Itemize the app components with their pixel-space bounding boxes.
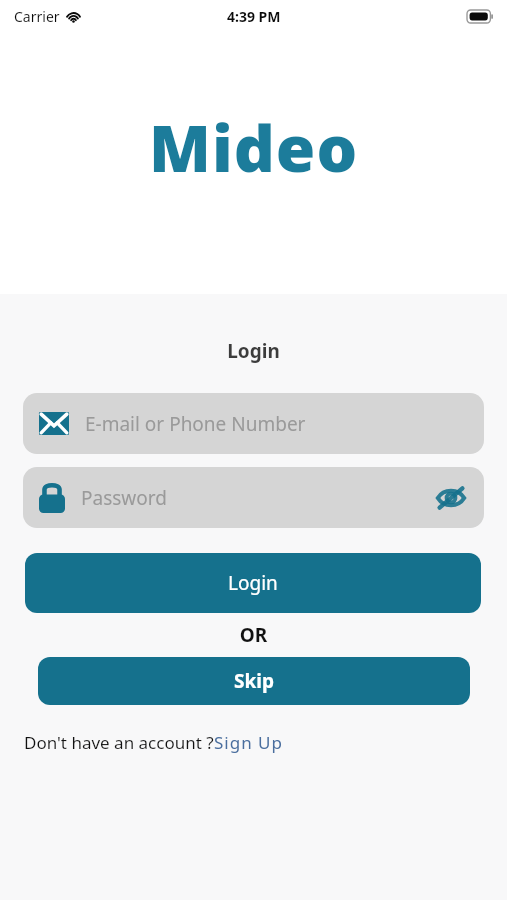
staticText: Carrier	[14, 7, 60, 26]
staticText: Skip	[234, 668, 274, 694]
button[interactable]: Show password	[436, 486, 466, 510]
button[interactable]: Skip	[38, 657, 470, 705]
staticText: Sign Up	[214, 731, 283, 754]
staticText: Login	[0, 338, 507, 364]
button[interactable]: Sign Up	[214, 731, 283, 754]
button[interactable]: Email	[23, 393, 484, 454]
other: Password	[39, 482, 65, 513]
staticText: Mideo	[149, 104, 359, 191]
staticText: E-mail or Phone Number	[85, 411, 306, 437]
staticText: Password	[81, 485, 167, 511]
button[interactable]: Login	[25, 553, 481, 613]
staticText: Don't have an account ?	[24, 731, 214, 754]
staticText: Login	[228, 570, 278, 596]
button[interactable]: Password	[23, 467, 484, 528]
other: Email	[39, 412, 69, 435]
staticText: OR	[0, 622, 507, 648]
staticText: 4:39 PM	[227, 7, 281, 26]
